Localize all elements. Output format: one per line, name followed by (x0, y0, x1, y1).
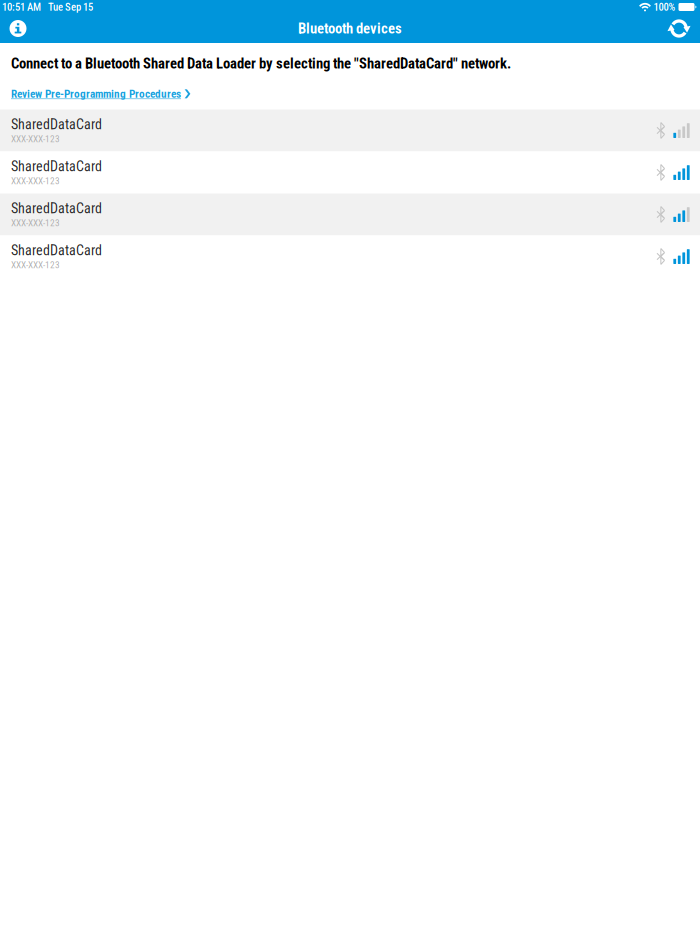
staticText: XXX-XXX-123 (11, 176, 60, 187)
staticText: XXX-XXX-123 (11, 134, 60, 145)
button[interactable]: SharedDataCard (0, 193, 700, 235)
staticText: Review Pre-Programming Procedures (11, 87, 181, 100)
staticText: XXX-XXX-123 (11, 260, 60, 271)
staticText: 100% (653, 1, 675, 13)
staticText: 10:51 AM (2, 1, 41, 13)
staticText: XXX-XXX-123 (11, 218, 60, 229)
staticText: SharedDataCard (11, 200, 102, 217)
staticText: SharedDataCard (11, 242, 102, 259)
button[interactable]: SharedDataCard (0, 151, 700, 193)
button[interactable]: SharedDataCard (0, 235, 700, 277)
button[interactable]: Information (0, 14, 36, 43)
button[interactable]: Refresh (658, 14, 700, 43)
button[interactable]: Review Pre-Programming Procedures (11, 87, 191, 100)
button[interactable]: SharedDataCard (0, 109, 700, 151)
staticText: SharedDataCard (11, 158, 102, 175)
staticText: SharedDataCard (11, 116, 102, 133)
staticText: Connect to a Bluetooth Shared Data Loade… (11, 55, 511, 72)
staticText: Tue Sep 15 (48, 1, 93, 13)
staticText: Bluetooth devices (298, 20, 402, 37)
